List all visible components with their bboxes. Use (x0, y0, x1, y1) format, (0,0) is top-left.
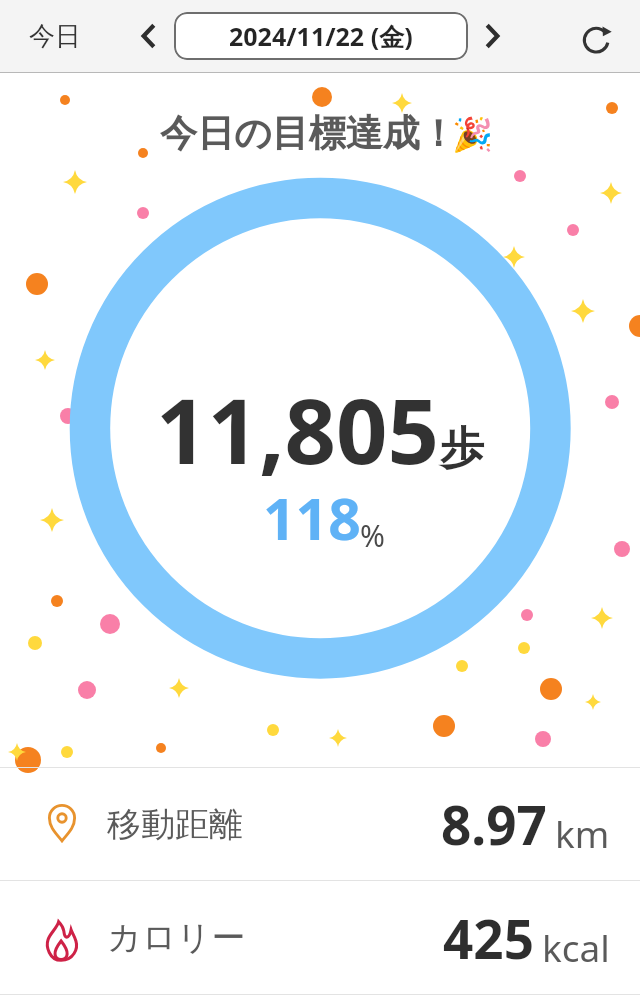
button[interactable]: Previous day (123, 0, 175, 72)
button[interactable]: 2024/11/22 (金) (174, 12, 468, 60)
button[interactable]: 移動距離 (0, 768, 640, 880)
staticText: km (555, 808, 610, 858)
staticText: 移動距離 (107, 803, 243, 846)
button[interactable]: 今日 (8, 0, 102, 72)
staticText: 2024/11/22 (金) (229, 19, 413, 53)
button[interactable]: カロリー (0, 881, 640, 994)
staticText: 今日の目標達成！ (160, 110, 457, 157)
staticText: 11,805 (156, 368, 440, 491)
staticText: 🎉 (452, 115, 494, 154)
staticText: カロリー (107, 916, 246, 959)
staticText: kcal (542, 922, 610, 972)
staticText: 8.97 (441, 788, 547, 860)
staticText: 118 (263, 479, 361, 557)
button[interactable]: Next day (466, 0, 518, 72)
staticText: 今日 (29, 20, 81, 53)
staticText: % (360, 515, 385, 556)
staticText: 歩 (440, 421, 484, 476)
button[interactable]: Refresh (567, 0, 629, 72)
staticText: 425 (443, 902, 534, 974)
